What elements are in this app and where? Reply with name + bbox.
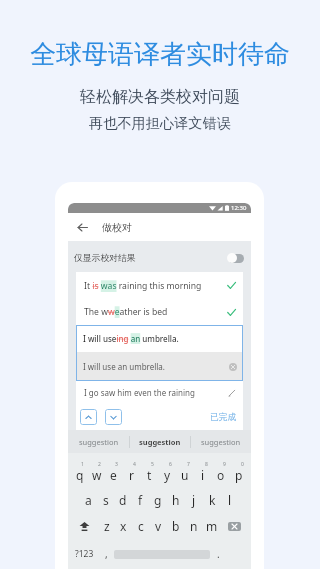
button[interactable]: 0 — [230, 461, 248, 483]
button[interactable]: suggestion — [68, 430, 129, 453]
other: Accept — [227, 281, 236, 290]
button[interactable]: It is was raining this morning — [76, 272, 243, 299]
button[interactable]: j — [185, 491, 203, 509]
staticText: v — [155, 518, 162, 534]
button[interactable]: Previous — [80, 409, 97, 425]
staticText: 12:30 — [231, 204, 247, 212]
button[interactable]: z — [98, 517, 115, 535]
button[interactable]: 3 — [105, 461, 122, 483]
button[interactable]: Backspace — [221, 517, 248, 535]
staticText: 9 — [223, 461, 226, 468]
staticText: The wweather is bed — [84, 306, 168, 318]
staticText: 轻松解决各类校对问题 — [80, 87, 240, 107]
staticText: w — [92, 467, 102, 483]
staticText: q — [76, 467, 84, 483]
staticText: 4 — [133, 461, 136, 468]
staticText: g — [154, 492, 162, 508]
staticText: suggestion — [201, 437, 241, 447]
button[interactable]: 仅显示校对结果 — [68, 244, 251, 272]
button[interactable]: h — [167, 491, 185, 509]
staticText: p — [235, 467, 243, 483]
staticText: , — [105, 547, 108, 561]
staticText: l — [228, 492, 232, 508]
staticText: 再也不用担心译文错误 — [89, 114, 231, 132]
button[interactable]: g — [149, 491, 167, 509]
staticText: c — [138, 518, 144, 534]
staticText: f — [138, 492, 143, 508]
button[interactable]: I go saw him even the raining — [76, 381, 243, 404]
staticText: 仅显示校对结果 — [74, 253, 136, 264]
button[interactable]: . — [210, 545, 226, 563]
button[interactable]: m — [203, 517, 221, 535]
button[interactable]: n — [185, 517, 203, 535]
staticText: 全球母语译者实时待命 — [30, 38, 290, 71]
staticText: x — [120, 518, 127, 534]
button[interactable]: 1 — [71, 461, 88, 483]
staticText: 0 — [241, 461, 244, 468]
staticText: n — [190, 518, 198, 534]
staticText: I will useing an umbrella. — [83, 333, 179, 344]
staticText: 3 — [115, 461, 118, 468]
button[interactable]: 7 — [176, 461, 194, 483]
staticText: s — [103, 492, 109, 508]
staticText: r — [129, 467, 134, 483]
staticText: It is was raining this morning — [84, 280, 202, 292]
staticText: e — [110, 467, 117, 483]
button[interactable]: k — [203, 491, 221, 509]
button[interactable]: ?123 — [71, 545, 98, 563]
button[interactable]: 5 — [140, 461, 158, 483]
staticText: ?123 — [75, 548, 94, 560]
button[interactable]: suggestion — [191, 430, 251, 453]
button[interactable]: 9 — [212, 461, 230, 483]
staticText: t — [147, 467, 152, 483]
staticText: 7 — [187, 461, 190, 468]
staticText: z — [104, 518, 110, 534]
button[interactable]: l — [221, 491, 239, 509]
staticText: h — [172, 492, 180, 508]
button[interactable]: d — [114, 491, 131, 509]
staticText: 8 — [205, 461, 208, 468]
button[interactable]: suggestion — [130, 430, 190, 453]
button[interactable]: c — [132, 517, 149, 535]
staticText: m — [206, 518, 218, 534]
staticText: 已完成 — [210, 412, 237, 423]
button[interactable]: b — [167, 517, 185, 535]
staticText: I will use an umbrella. — [83, 361, 165, 372]
button[interactable]: Next — [105, 409, 122, 425]
button[interactable]: The wweather is bed — [76, 299, 243, 325]
staticText: 做校对 — [102, 221, 132, 234]
button[interactable]: 4 — [122, 461, 140, 483]
staticText: 6 — [169, 461, 172, 468]
staticText: b — [172, 518, 180, 534]
button[interactable]: Shift — [71, 517, 98, 535]
staticText: suggestion — [139, 437, 181, 447]
staticText: j — [192, 492, 196, 508]
staticText: k — [209, 492, 216, 508]
staticText: u — [181, 467, 189, 483]
staticText: y — [164, 467, 171, 483]
staticText: i — [201, 467, 205, 483]
staticText: d — [119, 492, 127, 508]
staticText: 1 — [81, 461, 84, 468]
staticText: I go saw him even the raining — [84, 387, 195, 398]
button[interactable]: 2 — [88, 461, 105, 483]
button[interactable]: 8 — [194, 461, 212, 483]
button[interactable]: v — [149, 517, 167, 535]
button[interactable]: x — [115, 517, 132, 535]
button[interactable]: f — [131, 491, 149, 509]
other: Accept — [227, 308, 236, 317]
button[interactable]: , — [98, 545, 114, 563]
staticText: suggestion — [79, 437, 119, 447]
button[interactable]: a — [80, 491, 97, 509]
button[interactable]: 6 — [158, 461, 176, 483]
other: Dismiss — [229, 363, 237, 371]
staticText: o — [217, 467, 225, 483]
button[interactable]: Back — [68, 213, 96, 241]
button[interactable]: I will use an umbrella. — [76, 352, 243, 381]
staticText: a — [85, 492, 92, 508]
staticText: 2 — [98, 461, 101, 468]
other: Edit — [228, 389, 236, 397]
button[interactable]: s — [97, 491, 114, 509]
staticText: . — [217, 547, 220, 561]
